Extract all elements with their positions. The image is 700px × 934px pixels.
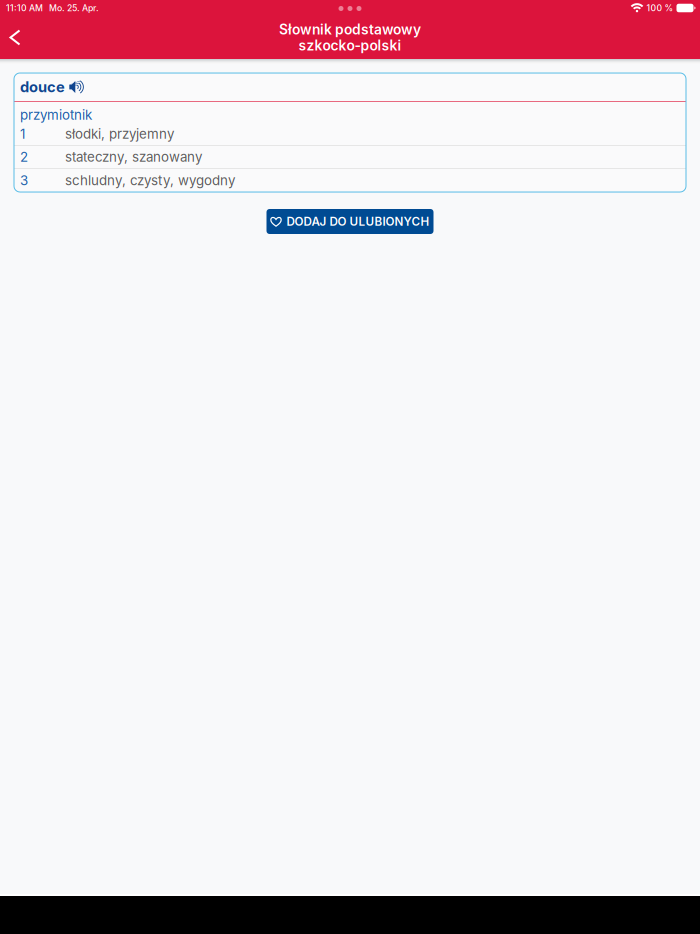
staticText: szkocko-polski bbox=[298, 37, 401, 54]
staticText: stateczny, szanowany bbox=[65, 149, 202, 165]
staticText: 11:10 AM bbox=[6, 3, 43, 13]
staticText: Mo. 25. Apr. bbox=[49, 3, 99, 13]
staticText: 100 % bbox=[646, 3, 673, 13]
staticText: Słownik podstawowy bbox=[279, 21, 421, 38]
staticText: DODAJ DO ULUBIONYCH bbox=[286, 214, 429, 228]
staticText: 1 bbox=[20, 126, 25, 142]
staticText: douce bbox=[20, 78, 65, 96]
button[interactable]: DODAJ DO ULUBIONYCH bbox=[266, 209, 433, 234]
staticText: 2 bbox=[20, 149, 28, 165]
staticText: przymiotnik bbox=[20, 107, 92, 123]
staticText: słodki, przyjemny bbox=[65, 126, 174, 142]
staticText: 3 bbox=[20, 172, 28, 188]
staticText: schludny, czysty, wygodny bbox=[65, 172, 235, 188]
button[interactable]: Back bbox=[0, 19, 30, 55]
